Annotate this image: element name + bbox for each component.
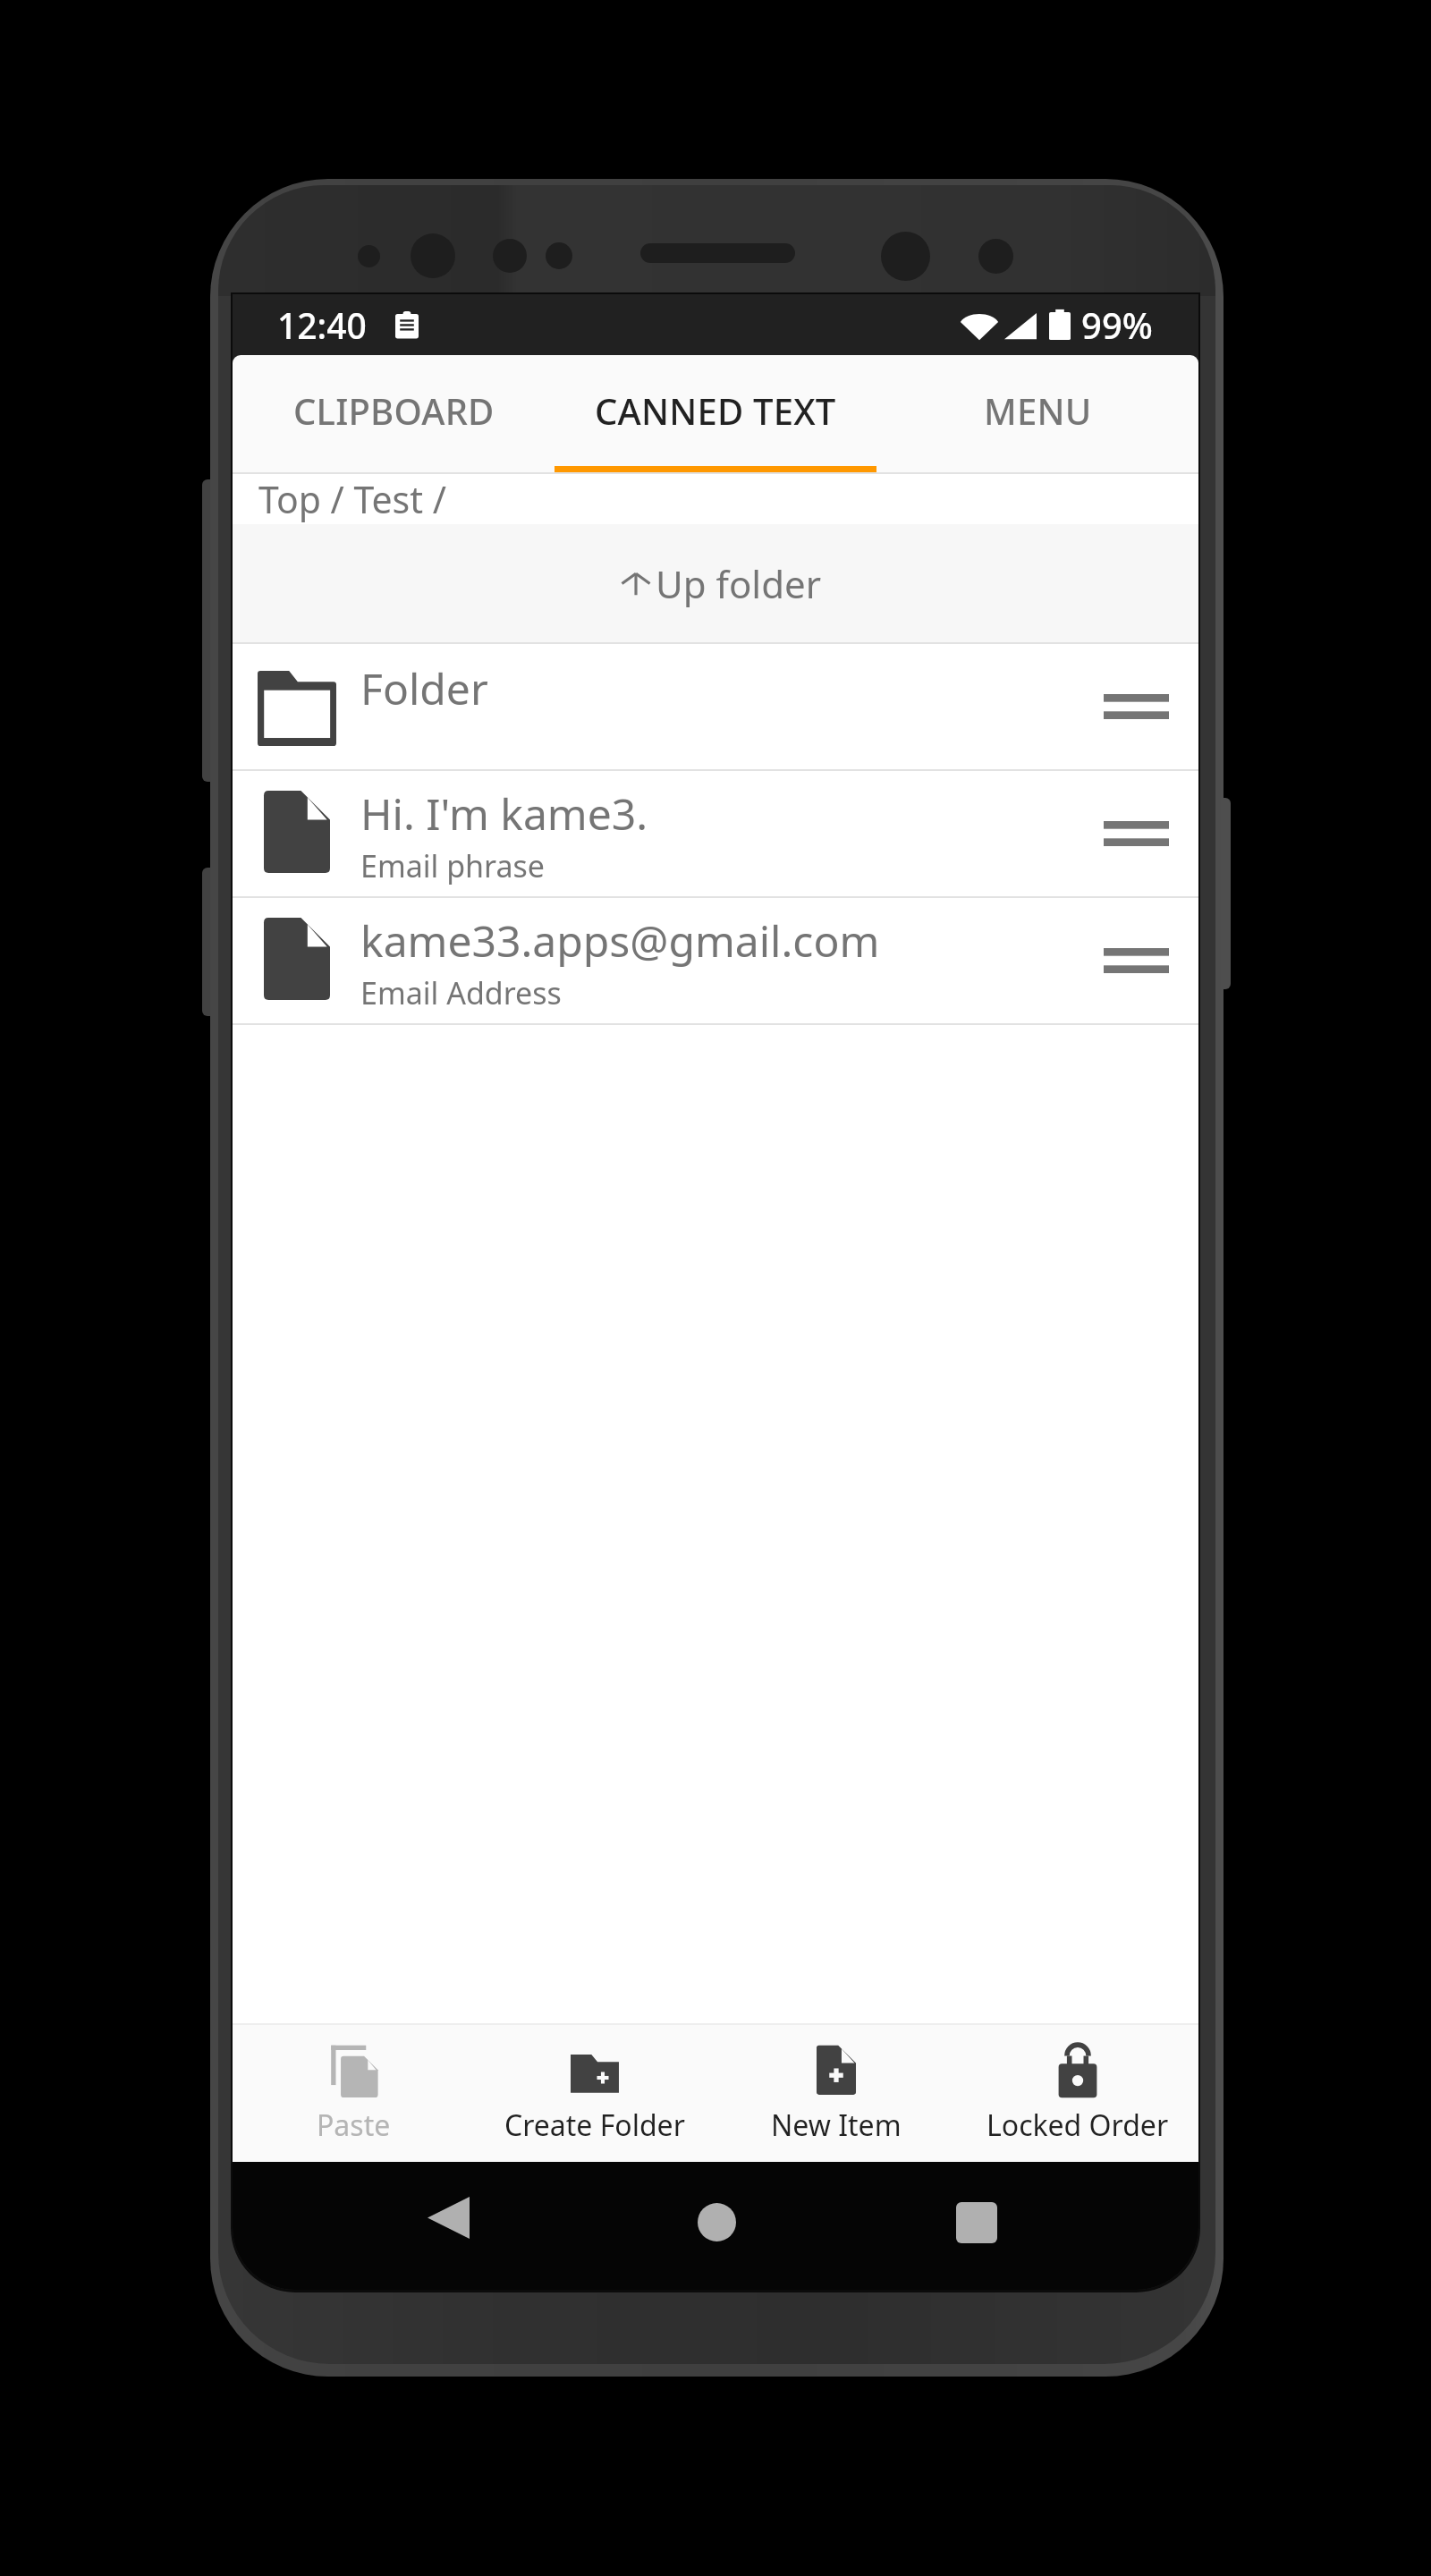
button[interactable]: Up folder [233,524,1198,642]
button[interactable]: Create Folder [474,2025,715,2162]
button[interactable]: CANNED TEXT [555,355,876,466]
button[interactable]: Recents [946,2192,1007,2253]
button[interactable]: Reorder [1104,666,1169,747]
staticText: MENU [984,386,1092,435]
button[interactable]: CLIPBOARD [233,355,555,466]
button[interactable]: Reorder [1104,793,1169,874]
staticText: New Item [771,2106,902,2145]
staticText: Folder [360,659,488,717]
button[interactable]: Reorder [1104,920,1169,1001]
button[interactable]: Folder [233,644,1198,769]
button[interactable]: Paste [233,2025,474,2162]
staticText: Create Folder [504,2106,685,2145]
button[interactable]: Back [418,2187,478,2248]
staticText: Email Address [360,972,562,1013]
staticText: 12:40 [277,301,367,349]
staticText: Hi. I'm kame3. [360,784,648,843]
button[interactable]: Home [686,2191,747,2252]
staticText: Email phrase [360,845,545,886]
staticText: CANNED TEXT [595,386,836,435]
button[interactable]: Locked Order [957,2025,1198,2162]
button[interactable]: kame33.apps@gmail.com [233,898,1198,1023]
staticText: Up folder [656,558,822,609]
staticText: kame33.apps@gmail.com [360,911,880,970]
staticText: Top / Test / [258,474,446,524]
button[interactable]: MENU [876,355,1198,466]
button[interactable]: New Item [715,2025,957,2162]
button[interactable]: Hi. I'm kame3. [233,771,1198,896]
staticText: Paste [317,2106,391,2145]
staticText: 99% [1081,301,1153,349]
staticText: Locked Order [986,2106,1169,2145]
staticText: CLIPBOARD [293,386,495,435]
